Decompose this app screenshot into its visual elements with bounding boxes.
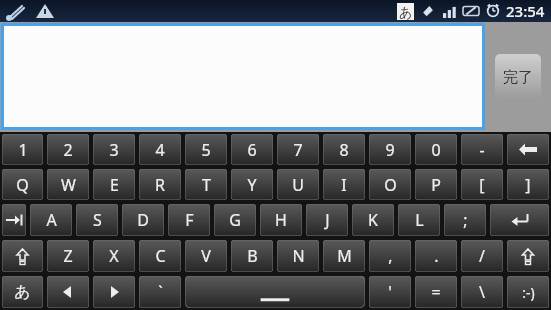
button[interactable]: , <box>369 240 411 272</box>
staticText: あ <box>14 282 31 302</box>
staticText: C <box>155 245 166 267</box>
staticText: Y <box>247 174 257 196</box>
staticText: P <box>431 174 441 196</box>
button[interactable]: L <box>398 204 440 236</box>
button[interactable]: [ <box>461 169 503 200</box>
staticText: F <box>185 209 194 231</box>
button[interactable]: 5 <box>185 134 227 165</box>
button[interactable]: あ <box>2 276 43 308</box>
button[interactable]: O <box>369 169 411 200</box>
button[interactable]: M <box>323 240 365 272</box>
button[interactable]: D <box>122 204 164 236</box>
button[interactable]: Cursor left <box>47 276 89 308</box>
staticText: - <box>479 139 485 161</box>
button[interactable]: F <box>168 204 210 236</box>
button[interactable]: B <box>231 240 273 272</box>
button[interactable]: Y <box>231 169 273 200</box>
staticText: R <box>155 174 165 196</box>
button[interactable]: Q <box>2 169 43 200</box>
button[interactable]: T <box>185 169 227 200</box>
button[interactable]: 0 <box>415 134 457 165</box>
staticText: N <box>292 245 305 267</box>
staticText: = <box>431 281 441 303</box>
staticText: ] <box>525 174 531 196</box>
staticText: ' <box>388 281 392 303</box>
staticText: Q <box>16 174 29 196</box>
staticText: O <box>384 174 397 196</box>
staticText: 9 <box>385 139 395 161</box>
staticText: :-) <box>522 283 535 302</box>
button[interactable]: ` <box>139 276 181 308</box>
button[interactable]: Shift <box>507 240 549 272</box>
staticText: Z <box>63 245 73 267</box>
button[interactable]: U <box>277 169 319 200</box>
staticText: 完了 <box>503 68 533 87</box>
staticText: I <box>341 174 347 196</box>
button[interactable]: 6 <box>231 134 273 165</box>
staticText: [ <box>479 174 485 196</box>
staticText: L <box>415 209 424 231</box>
button[interactable]: W <box>47 169 89 200</box>
button[interactable]: N <box>277 240 319 272</box>
staticText: 8 <box>339 139 349 161</box>
staticText: 5 <box>201 139 211 161</box>
button[interactable]: 1 <box>2 134 43 165</box>
staticText: J <box>325 209 330 231</box>
staticText: / <box>479 245 485 267</box>
button[interactable]: - <box>461 134 503 165</box>
button[interactable]: C <box>139 240 181 272</box>
staticText: E <box>110 174 119 196</box>
button[interactable]: Z <box>47 240 89 272</box>
button[interactable]: V <box>185 240 227 272</box>
button[interactable]: P <box>415 169 457 200</box>
button[interactable]: 4 <box>139 134 181 165</box>
button[interactable]: A <box>30 204 72 236</box>
button[interactable]: Backspace <box>507 134 549 165</box>
staticText: K <box>368 209 378 231</box>
button[interactable]: / <box>461 240 503 272</box>
button[interactable]: 3 <box>93 134 135 165</box>
button[interactable]: Shift <box>2 240 43 272</box>
button[interactable]: 2 <box>47 134 89 165</box>
button[interactable]: X <box>93 240 135 272</box>
button[interactable]: 8 <box>323 134 365 165</box>
staticText: S <box>93 209 102 231</box>
staticText: . <box>434 245 439 267</box>
button[interactable]: :-) <box>507 276 549 308</box>
staticText: H <box>275 209 287 231</box>
button[interactable]: Space <box>185 276 365 308</box>
staticText: M <box>337 245 352 267</box>
button[interactable]: Tab <box>2 204 26 236</box>
staticText: A <box>46 209 57 231</box>
button[interactable]: . <box>415 240 457 272</box>
staticText: 7 <box>293 139 303 161</box>
staticText: 6 <box>247 139 257 161</box>
button[interactable]: Cursor right <box>93 276 135 308</box>
button[interactable]: S <box>76 204 118 236</box>
button[interactable]: ] <box>507 169 549 200</box>
staticText: U <box>292 174 304 196</box>
button[interactable]: = <box>415 276 457 308</box>
button[interactable]: H <box>260 204 302 236</box>
button[interactable]: E <box>93 169 135 200</box>
staticText: 23:54 <box>506 1 545 21</box>
button[interactable]: R <box>139 169 181 200</box>
staticText: V <box>201 245 211 267</box>
staticText: あ <box>399 4 413 20</box>
staticText: G <box>229 209 241 231</box>
button[interactable]: Enter <box>490 204 549 236</box>
staticText: X <box>109 245 119 267</box>
button[interactable]: 完了 <box>495 54 541 100</box>
staticText: T <box>202 174 211 196</box>
button[interactable]: 7 <box>277 134 319 165</box>
button[interactable]: \ <box>461 276 503 308</box>
button[interactable]: K <box>352 204 394 236</box>
button[interactable]: J <box>306 204 348 236</box>
staticText: D <box>137 209 149 231</box>
button[interactable]: I <box>323 169 365 200</box>
button[interactable]: 9 <box>369 134 411 165</box>
button[interactable]: ' <box>369 276 411 308</box>
button[interactable]: ; <box>444 204 486 236</box>
button[interactable]: G <box>214 204 256 236</box>
